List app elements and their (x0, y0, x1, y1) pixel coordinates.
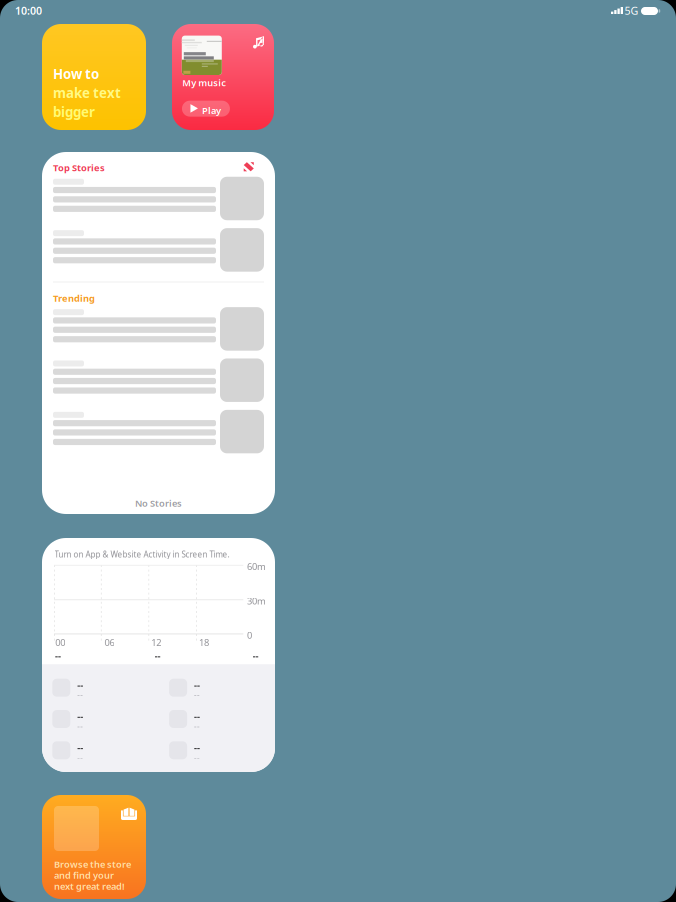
staticText: -- (252, 649, 258, 662)
staticText: -- (194, 752, 200, 763)
staticText: 00 (55, 636, 65, 649)
staticText: Play (202, 104, 221, 117)
staticText: -- (77, 690, 83, 700)
staticText: -- (194, 710, 200, 722)
staticText: 5G (624, 3, 638, 18)
staticText: 18 (199, 636, 209, 649)
button[interactable]: Browse the store (42, 795, 146, 899)
staticText: -- (77, 752, 83, 763)
button[interactable]: My music (172, 24, 274, 130)
staticText: 06 (104, 636, 114, 649)
staticText: bigger (53, 103, 95, 121)
staticText: -- (154, 649, 160, 662)
staticText: -- (194, 690, 200, 700)
staticText: -- (194, 679, 200, 691)
staticText: 30m (247, 595, 266, 607)
staticText: Trending (53, 292, 95, 304)
staticText: -- (194, 721, 200, 732)
staticText: 12 (151, 636, 161, 649)
button[interactable]: Top Stories (42, 152, 275, 514)
staticText: next great read! (54, 880, 125, 892)
staticText: 10:00 (15, 3, 42, 18)
button[interactable]: Turn on App & Website Activity in Screen… (42, 538, 275, 772)
staticText: -- (77, 741, 83, 754)
staticText: make text (53, 84, 121, 102)
staticText: No Stories (135, 497, 182, 509)
staticText: -- (55, 649, 61, 662)
staticText: 60m (247, 560, 266, 573)
staticText: and find your (54, 869, 114, 881)
staticText: -- (77, 721, 83, 732)
staticText: Turn on App & Website Activity in Screen… (54, 549, 229, 560)
button[interactable]: How to (42, 24, 146, 130)
staticText: How to (53, 65, 99, 83)
staticText: Top Stories (53, 161, 105, 174)
staticText: -- (77, 710, 83, 722)
staticText: -- (77, 679, 83, 691)
staticText: -- (194, 741, 200, 754)
staticText: My music (182, 76, 226, 89)
staticText: 0 (247, 629, 252, 641)
staticText: Browse the store (54, 858, 131, 870)
